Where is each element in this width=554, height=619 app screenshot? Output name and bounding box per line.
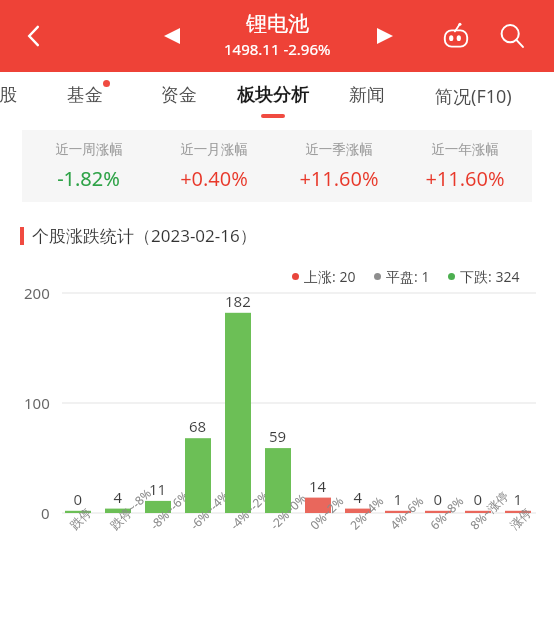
button[interactable]: 基金 — [38, 72, 132, 130]
staticText: 近一年涨幅 — [431, 141, 499, 158]
button[interactable]: 新闻 — [320, 72, 414, 130]
staticText: +0.40% — [180, 165, 248, 192]
staticText: +11.60% — [299, 165, 379, 192]
staticText: 简况(F10) — [435, 84, 512, 109]
button[interactable]: 股 — [0, 72, 38, 130]
staticText: 基金 — [67, 84, 103, 107]
staticText: -1.82% — [57, 165, 120, 192]
staticText: 个股涨跌统计（2023-02-16） — [32, 224, 257, 247]
button[interactable]: 资金 — [132, 72, 226, 130]
staticText: 下跌: 324 — [460, 267, 520, 286]
button[interactable]: Previous — [150, 14, 194, 58]
staticText: +11.60% — [425, 165, 505, 192]
staticText: 资金 — [161, 84, 197, 107]
staticText: 1498.11 -2.96% — [224, 39, 331, 59]
button[interactable]: Assistant — [432, 12, 480, 60]
staticText: 板块分析 — [237, 84, 309, 107]
staticText: 近一月涨幅 — [180, 141, 248, 158]
button[interactable]: Search — [488, 12, 536, 60]
button[interactable]: 板块分析 — [226, 72, 320, 130]
staticText: 新闻 — [349, 84, 385, 107]
button[interactable]: Back — [10, 12, 58, 60]
button[interactable]: 简况(F10) — [414, 72, 532, 130]
staticText: 股 — [0, 84, 17, 107]
staticText: 平盘: 1 — [386, 267, 430, 286]
staticText: 上涨: 20 — [304, 267, 356, 286]
staticText: 近一周涨幅 — [55, 141, 123, 158]
button[interactable]: Next — [363, 14, 407, 58]
staticText: 近一季涨幅 — [305, 141, 373, 158]
staticText: 锂电池 — [246, 11, 309, 37]
